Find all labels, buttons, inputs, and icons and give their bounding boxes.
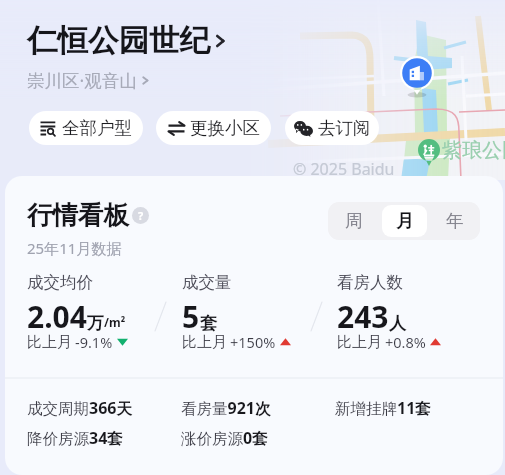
staticText: 5 <box>182 296 200 337</box>
staticText: 新增挂牌11套 <box>335 397 431 419</box>
other: Map location marker <box>400 56 434 98</box>
staticText: 比上月 <box>182 333 227 352</box>
staticText: 全部户型 <box>62 117 132 139</box>
staticText: ? <box>138 208 144 223</box>
staticText: 25年11月数据 <box>27 238 122 258</box>
staticText: 仁恒公园世纪 <box>27 22 210 60</box>
staticText: 去订阅 <box>318 117 371 139</box>
staticText: 比上月 <box>27 333 72 352</box>
button[interactable]: 年 <box>433 205 477 237</box>
staticText: 崇川区·观音山 <box>27 68 137 92</box>
staticText: 比上月 <box>337 333 382 352</box>
staticText: 2.04 <box>27 296 87 337</box>
staticText: +150% <box>230 332 276 352</box>
staticText: 人 <box>389 313 406 334</box>
staticText: -9.1% <box>75 332 113 352</box>
staticText: 行情看板 <box>27 199 129 231</box>
staticText: © 2025 Baidu <box>293 158 395 180</box>
staticText: 成交量 <box>182 272 232 293</box>
button[interactable]: 全部户型 <box>29 111 143 145</box>
staticText: 更换小区 <box>190 117 260 139</box>
staticText: 月 <box>396 210 414 232</box>
button[interactable]: 崇川区·观音山 <box>27 68 150 92</box>
staticText: +0.8% <box>385 332 426 352</box>
staticText: 万 <box>87 313 104 334</box>
button[interactable]: 仁恒公园世纪 <box>27 22 227 60</box>
button[interactable]: 更换小区 <box>156 111 271 145</box>
staticText: 看房量921次 <box>181 397 271 419</box>
staticText: 涨价房源0套 <box>181 427 268 449</box>
staticText: 紫琅公园 <box>442 138 505 163</box>
staticText: 年 <box>446 210 464 232</box>
button[interactable]: 周 <box>331 205 376 237</box>
staticText: /m² <box>104 314 126 330</box>
staticText: 套 <box>200 313 217 334</box>
staticText: 成交周期366天 <box>27 397 132 419</box>
staticText: 成交均价 <box>27 272 93 293</box>
staticText: 降价房源34套 <box>27 427 123 449</box>
button[interactable]: 月 <box>382 205 427 237</box>
staticText: 243 <box>337 296 389 337</box>
staticText: 周 <box>345 210 363 232</box>
button[interactable]: 去订阅 <box>285 111 379 145</box>
staticText: 看房人数 <box>337 272 403 293</box>
